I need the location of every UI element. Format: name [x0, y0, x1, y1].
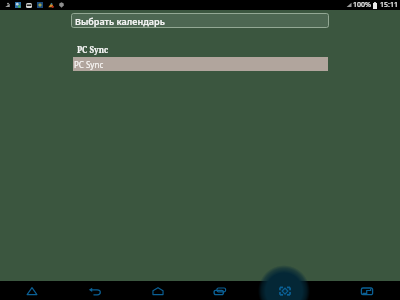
button[interactable]: Recent apps	[199, 281, 241, 300]
button[interactable]: Multi window	[346, 281, 388, 300]
staticText: PC Sync	[77, 44, 109, 55]
button[interactable]: Back	[74, 281, 116, 300]
button[interactable]: PC Sync	[73, 57, 328, 71]
staticText: 100%	[353, 0, 371, 10]
staticText: Выбрать календарь	[75, 15, 165, 27]
button[interactable]: Выбрать календарь	[71, 13, 329, 28]
staticText: PC Sync	[74, 59, 104, 70]
button[interactable]: Back	[11, 281, 53, 300]
staticText: 15:11	[380, 0, 398, 10]
button[interactable]: Screenshot	[264, 281, 306, 300]
button[interactable]: Home	[137, 281, 179, 300]
